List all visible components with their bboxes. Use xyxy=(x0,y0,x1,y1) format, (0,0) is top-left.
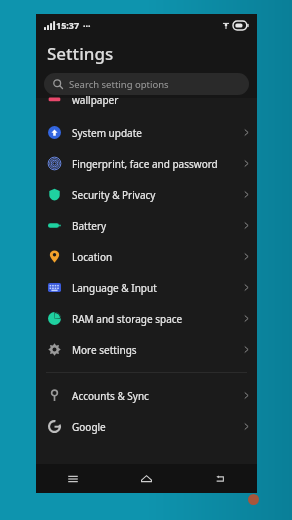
staticText: RAM and storage space xyxy=(72,312,235,326)
staticText: ··· xyxy=(83,19,91,31)
button[interactable]: Google xyxy=(36,411,257,442)
button[interactable]: Location xyxy=(36,241,257,272)
button[interactable]: Security & Privacy xyxy=(36,179,257,210)
button[interactable]: RAM and storage space xyxy=(36,303,257,334)
button[interactable]: Home xyxy=(109,464,183,493)
staticText: wallpaper xyxy=(72,93,119,107)
staticText: Accounts & Sync xyxy=(72,389,235,403)
button[interactable]: Fingerprint, face and password xyxy=(36,148,257,179)
staticText: Language & Input xyxy=(72,281,235,295)
staticText: Battery xyxy=(72,219,235,233)
staticText: Security & Privacy xyxy=(72,188,235,202)
staticText: Settings xyxy=(47,42,114,65)
staticText: Google xyxy=(72,420,235,434)
button[interactable]: System update xyxy=(36,117,257,148)
staticText: More settings xyxy=(72,343,235,357)
staticText: System update xyxy=(72,126,235,140)
button[interactable]: Accounts & Sync xyxy=(36,380,257,411)
staticText: Location xyxy=(72,250,235,264)
button[interactable]: Search setting options xyxy=(44,73,249,95)
staticText: 15:37 xyxy=(56,19,80,31)
button[interactable]: Language & Input xyxy=(36,272,257,303)
button[interactable]: Back xyxy=(183,464,257,493)
staticText: Search setting options xyxy=(69,78,169,91)
button[interactable]: More settings xyxy=(36,334,257,365)
button[interactable]: Battery xyxy=(36,210,257,241)
staticText: Fingerprint, face and password xyxy=(72,157,235,171)
button[interactable]: wallpaper xyxy=(36,98,257,117)
button[interactable]: Recent apps xyxy=(36,464,109,493)
